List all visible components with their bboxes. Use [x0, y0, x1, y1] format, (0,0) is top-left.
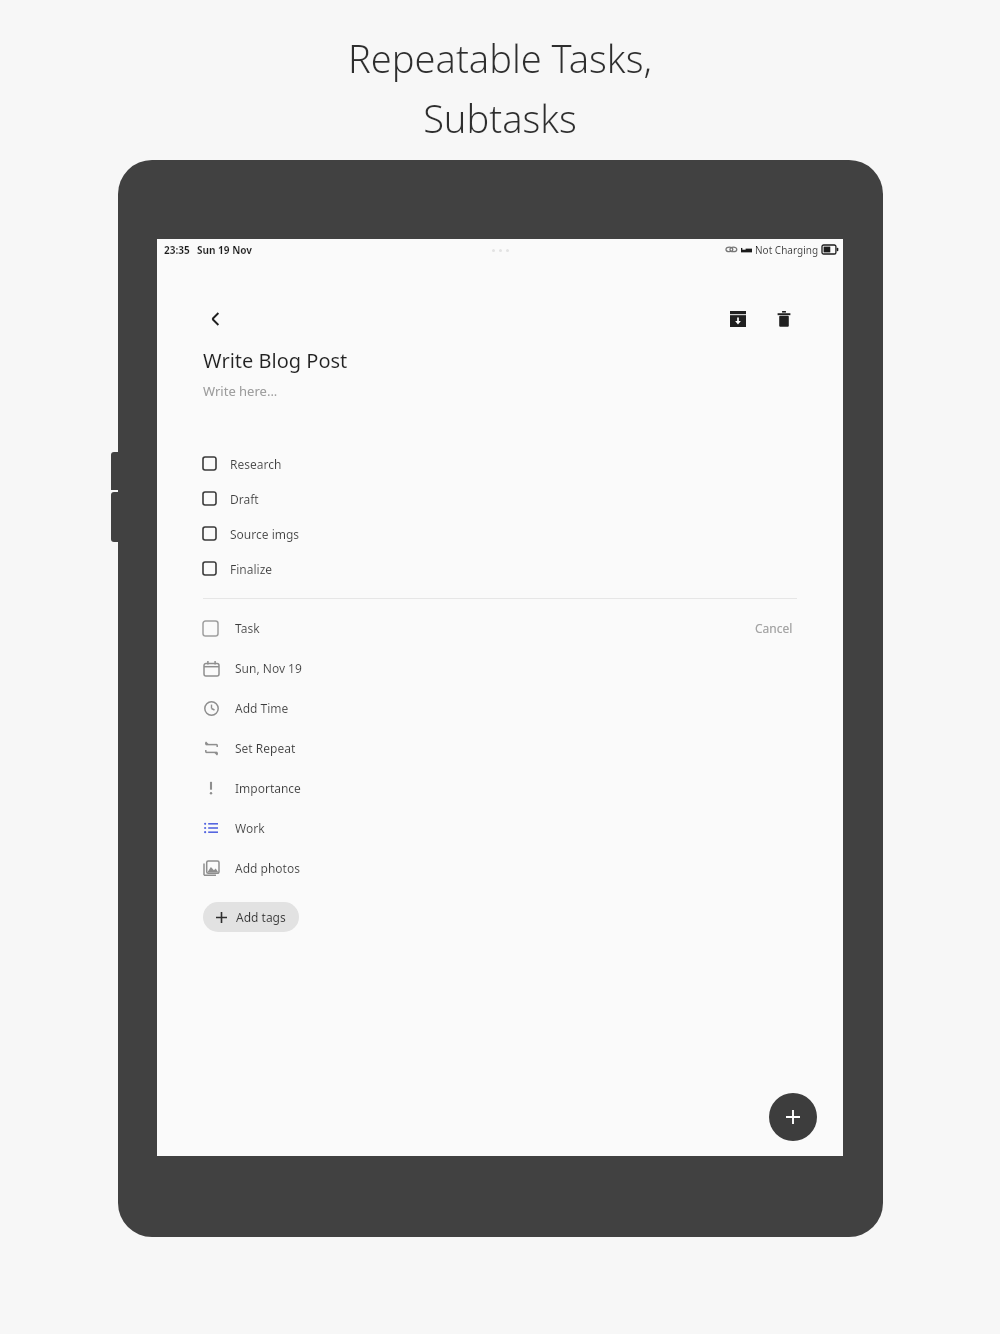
button[interactable]: Back	[201, 304, 231, 334]
staticText: Sun, Nov 19	[235, 660, 302, 676]
staticText: 23:35	[164, 243, 190, 257]
staticText: Add photos	[235, 860, 300, 876]
button[interactable]: Add tags	[203, 902, 299, 932]
button[interactable]: Sun, Nov 19	[157, 648, 843, 688]
staticText: Task	[235, 620, 260, 636]
staticText: Write Blog Post	[203, 347, 348, 374]
staticText: Importance	[235, 780, 301, 796]
staticText: Sun 19 Nov	[197, 243, 253, 257]
button[interactable]: Finalize	[157, 551, 843, 586]
button[interactable]: Add Time	[157, 688, 843, 728]
staticText: Add Time	[235, 700, 289, 716]
button[interactable]: Importance	[157, 768, 843, 808]
button[interactable]: Cancel	[751, 616, 797, 640]
staticText: Source imgs	[230, 526, 300, 542]
staticText: Cancel	[755, 620, 793, 636]
button[interactable]: Set Repeat	[157, 728, 843, 768]
staticText: Not Charging	[755, 243, 819, 257]
button[interactable]: Draft	[157, 481, 843, 516]
staticText: Write here...	[203, 382, 278, 400]
staticText: Subtasks	[423, 92, 577, 144]
button[interactable]: Archive	[723, 304, 753, 334]
staticText: Work	[235, 820, 265, 836]
staticText: Set Repeat	[235, 740, 296, 756]
staticText: Draft	[230, 491, 259, 507]
button[interactable]: Add task	[769, 1093, 817, 1141]
button[interactable]: Research	[157, 446, 843, 481]
staticText: Research	[230, 456, 282, 472]
staticText: Finalize	[230, 561, 273, 577]
button[interactable]: Delete	[769, 304, 799, 334]
button[interactable]: Work	[157, 808, 843, 848]
button[interactable]: Source imgs	[157, 516, 843, 551]
button[interactable]: Add photos	[157, 848, 843, 888]
staticText: Add tags	[236, 909, 286, 925]
staticText: Repeatable Tasks,	[348, 32, 652, 84]
button[interactable]: Task	[157, 608, 843, 648]
